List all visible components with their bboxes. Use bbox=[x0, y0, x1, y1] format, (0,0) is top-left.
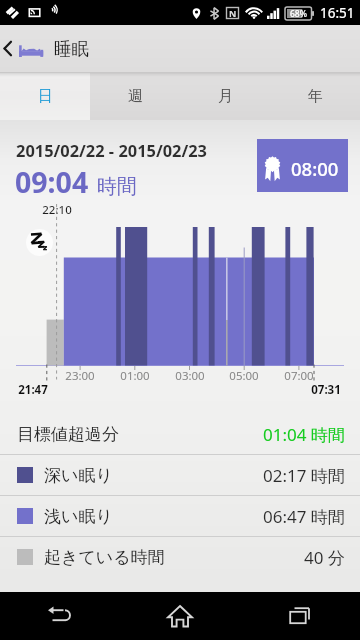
button[interactable]: Back bbox=[0, 592, 120, 640]
staticText: N bbox=[229, 7, 237, 19]
staticText: 目標値超過分 bbox=[17, 424, 119, 445]
staticText: 浅い眠り bbox=[44, 506, 113, 527]
staticText: 21:47 bbox=[0, 382, 68, 398]
staticText: 68% bbox=[290, 8, 307, 20]
staticText: 08:00 bbox=[291, 156, 339, 181]
staticText: 16:51 bbox=[320, 4, 355, 22]
staticText: 週 bbox=[128, 87, 143, 106]
staticText: 深い眠り bbox=[44, 465, 113, 486]
button[interactable]: Home bbox=[120, 592, 240, 640]
staticText: 睡眠 bbox=[54, 38, 89, 60]
staticText: 06:47 時間 bbox=[263, 505, 345, 528]
staticText: 07:00 bbox=[269, 368, 329, 384]
staticText: 02:17 時間 bbox=[263, 464, 345, 487]
staticText: 01:00 bbox=[105, 368, 165, 384]
button[interactable]: 日 bbox=[0, 73, 90, 120]
button[interactable]: 起きている時間 bbox=[0, 537, 360, 577]
staticText: 22:10 bbox=[27, 202, 87, 218]
staticText: 23:00 bbox=[50, 368, 110, 384]
staticText: 40 分 bbox=[304, 546, 345, 569]
staticText: 05:00 bbox=[214, 368, 274, 384]
staticText: 2015/02/22 - 2015/02/23 bbox=[16, 139, 207, 161]
staticText: 03:00 bbox=[160, 368, 220, 384]
staticText: 起きている時間 bbox=[44, 547, 165, 568]
button[interactable]: 浅い眠り bbox=[0, 496, 360, 536]
button[interactable]: Back bbox=[0, 25, 17, 72]
staticText: 年 bbox=[308, 87, 323, 106]
staticText: 時間 bbox=[97, 174, 137, 199]
button[interactable]: 08:00 bbox=[257, 139, 348, 192]
button[interactable]: 週 bbox=[90, 73, 180, 120]
button[interactable]: 目標値超過分 bbox=[0, 414, 360, 454]
staticText: 07:31 bbox=[291, 382, 360, 398]
button[interactable]: 月 bbox=[180, 73, 270, 120]
staticText: 01:04 時間 bbox=[263, 423, 345, 446]
staticText: 09:04 bbox=[15, 163, 89, 202]
button[interactable]: 年 bbox=[270, 73, 360, 120]
button[interactable]: Recent apps bbox=[240, 592, 360, 640]
staticText: 月 bbox=[218, 87, 233, 106]
button[interactable]: 深い眠り bbox=[0, 455, 360, 495]
staticText: 日 bbox=[38, 87, 53, 106]
